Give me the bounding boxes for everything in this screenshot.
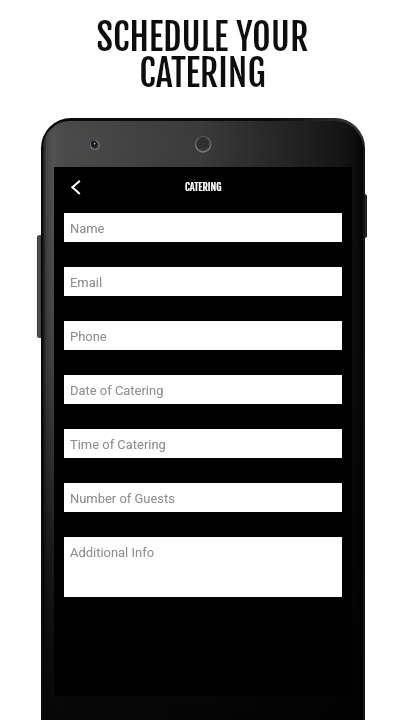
staticText: Email [70,275,103,290]
staticText: CATERING [185,181,222,194]
staticText: CATERING [0,51,405,96]
staticText: Date of Catering [70,383,164,398]
staticText: Number of Guests [70,491,175,506]
staticText: Additional Info [70,545,155,560]
button[interactable]: Number of Guests [64,483,342,512]
staticText: SCHEDULE YOUR [0,15,405,60]
staticText: Name [70,221,105,236]
button[interactable]: Time of Catering [64,429,342,458]
button[interactable]: Date of Catering [64,375,342,404]
staticText: Time of Catering [70,437,166,452]
staticText: Phone [70,329,107,344]
button[interactable]: Name [64,213,342,242]
button[interactable]: Additional Info [64,537,342,597]
button[interactable]: Email [64,267,342,296]
button[interactable]: Phone [64,321,342,350]
button[interactable]: Back [55,167,95,207]
